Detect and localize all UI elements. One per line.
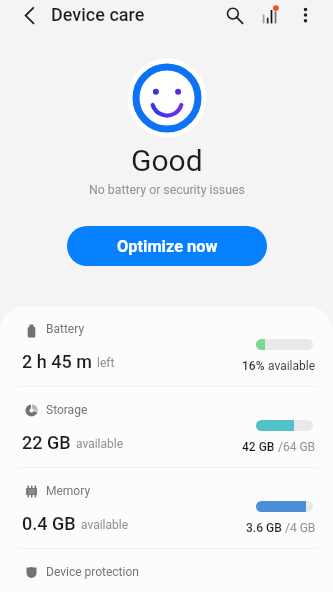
button[interactable]: Storage	[0, 387, 333, 467]
staticText: left	[97, 356, 115, 370]
staticText: Device protection	[46, 565, 139, 579]
staticText: 0.4 GB	[22, 513, 76, 534]
staticText: 16%	[242, 359, 265, 373]
button[interactable]: Diagnostics	[255, 1, 283, 29]
button[interactable]: Search	[221, 1, 249, 29]
staticText: available	[76, 437, 124, 451]
staticText: Storage	[46, 403, 88, 417]
button[interactable]: Optimize now	[67, 226, 267, 266]
button[interactable]: Battery	[0, 306, 333, 386]
staticText: 42 GB	[242, 440, 275, 454]
staticText: No battery or security issues	[89, 183, 245, 197]
staticText: 3.6 GB	[246, 521, 282, 535]
staticText: Good	[131, 143, 203, 178]
staticText: Device care	[51, 4, 145, 25]
staticText: Battery	[46, 322, 85, 336]
staticText: 22 GB	[22, 432, 71, 453]
button[interactable]: Device protection	[0, 549, 333, 592]
staticText: /4 GB	[282, 521, 316, 535]
button[interactable]: Memory	[0, 468, 333, 548]
staticText: /64 GB	[275, 440, 316, 454]
staticText: available	[265, 359, 316, 373]
button[interactable]: More options	[290, 1, 318, 29]
button[interactable]: Back	[15, 1, 43, 29]
staticText: 2 h 45 m	[22, 351, 92, 372]
staticText: Optimize now	[117, 237, 218, 256]
staticText: available	[81, 518, 129, 532]
staticText: Memory	[46, 484, 91, 498]
